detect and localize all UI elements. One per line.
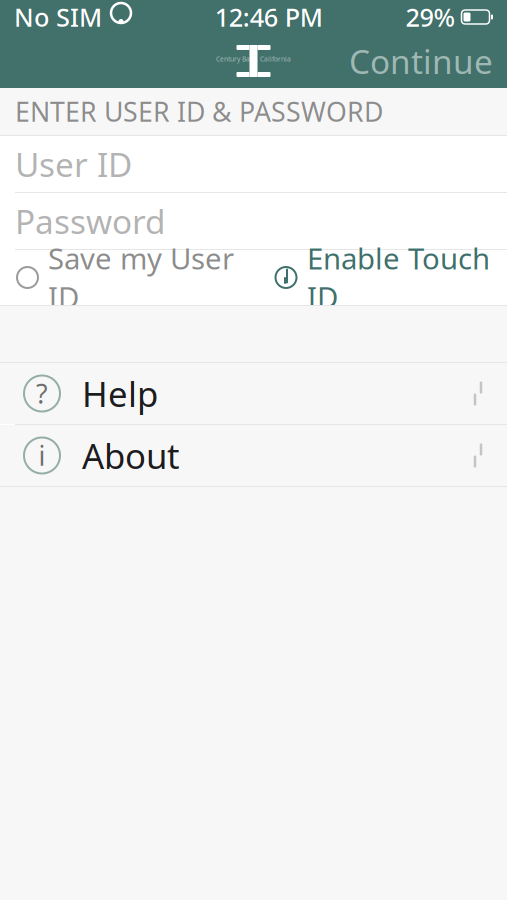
button[interactable]: Password [0, 193, 507, 249]
button[interactable]: User ID [0, 136, 507, 192]
button[interactable]: ? [0, 363, 507, 424]
staticText: Help [82, 370, 158, 416]
button[interactable]: i [0, 425, 507, 486]
staticText: Continue [349, 39, 493, 83]
staticText: Century Bank California [216, 55, 291, 63]
staticText: ? [36, 376, 48, 411]
button[interactable]: Enable Touch ID [272, 228, 492, 326]
staticText: 29% [405, 0, 455, 34]
staticText: ENTER USER ID & PASSWORD [15, 94, 383, 129]
staticText: Enable Touch ID [307, 238, 490, 316]
staticText: Password [15, 199, 166, 243]
button[interactable]: Save my User ID [15, 228, 236, 326]
staticText: i [38, 438, 45, 473]
staticText: 12:46 PM [215, 0, 323, 34]
staticText: About [82, 432, 180, 478]
staticText: Save my User ID [48, 238, 234, 316]
staticText: No SIM [14, 0, 102, 34]
button[interactable]: Continue [335, 29, 507, 93]
staticText: User ID [15, 142, 132, 186]
